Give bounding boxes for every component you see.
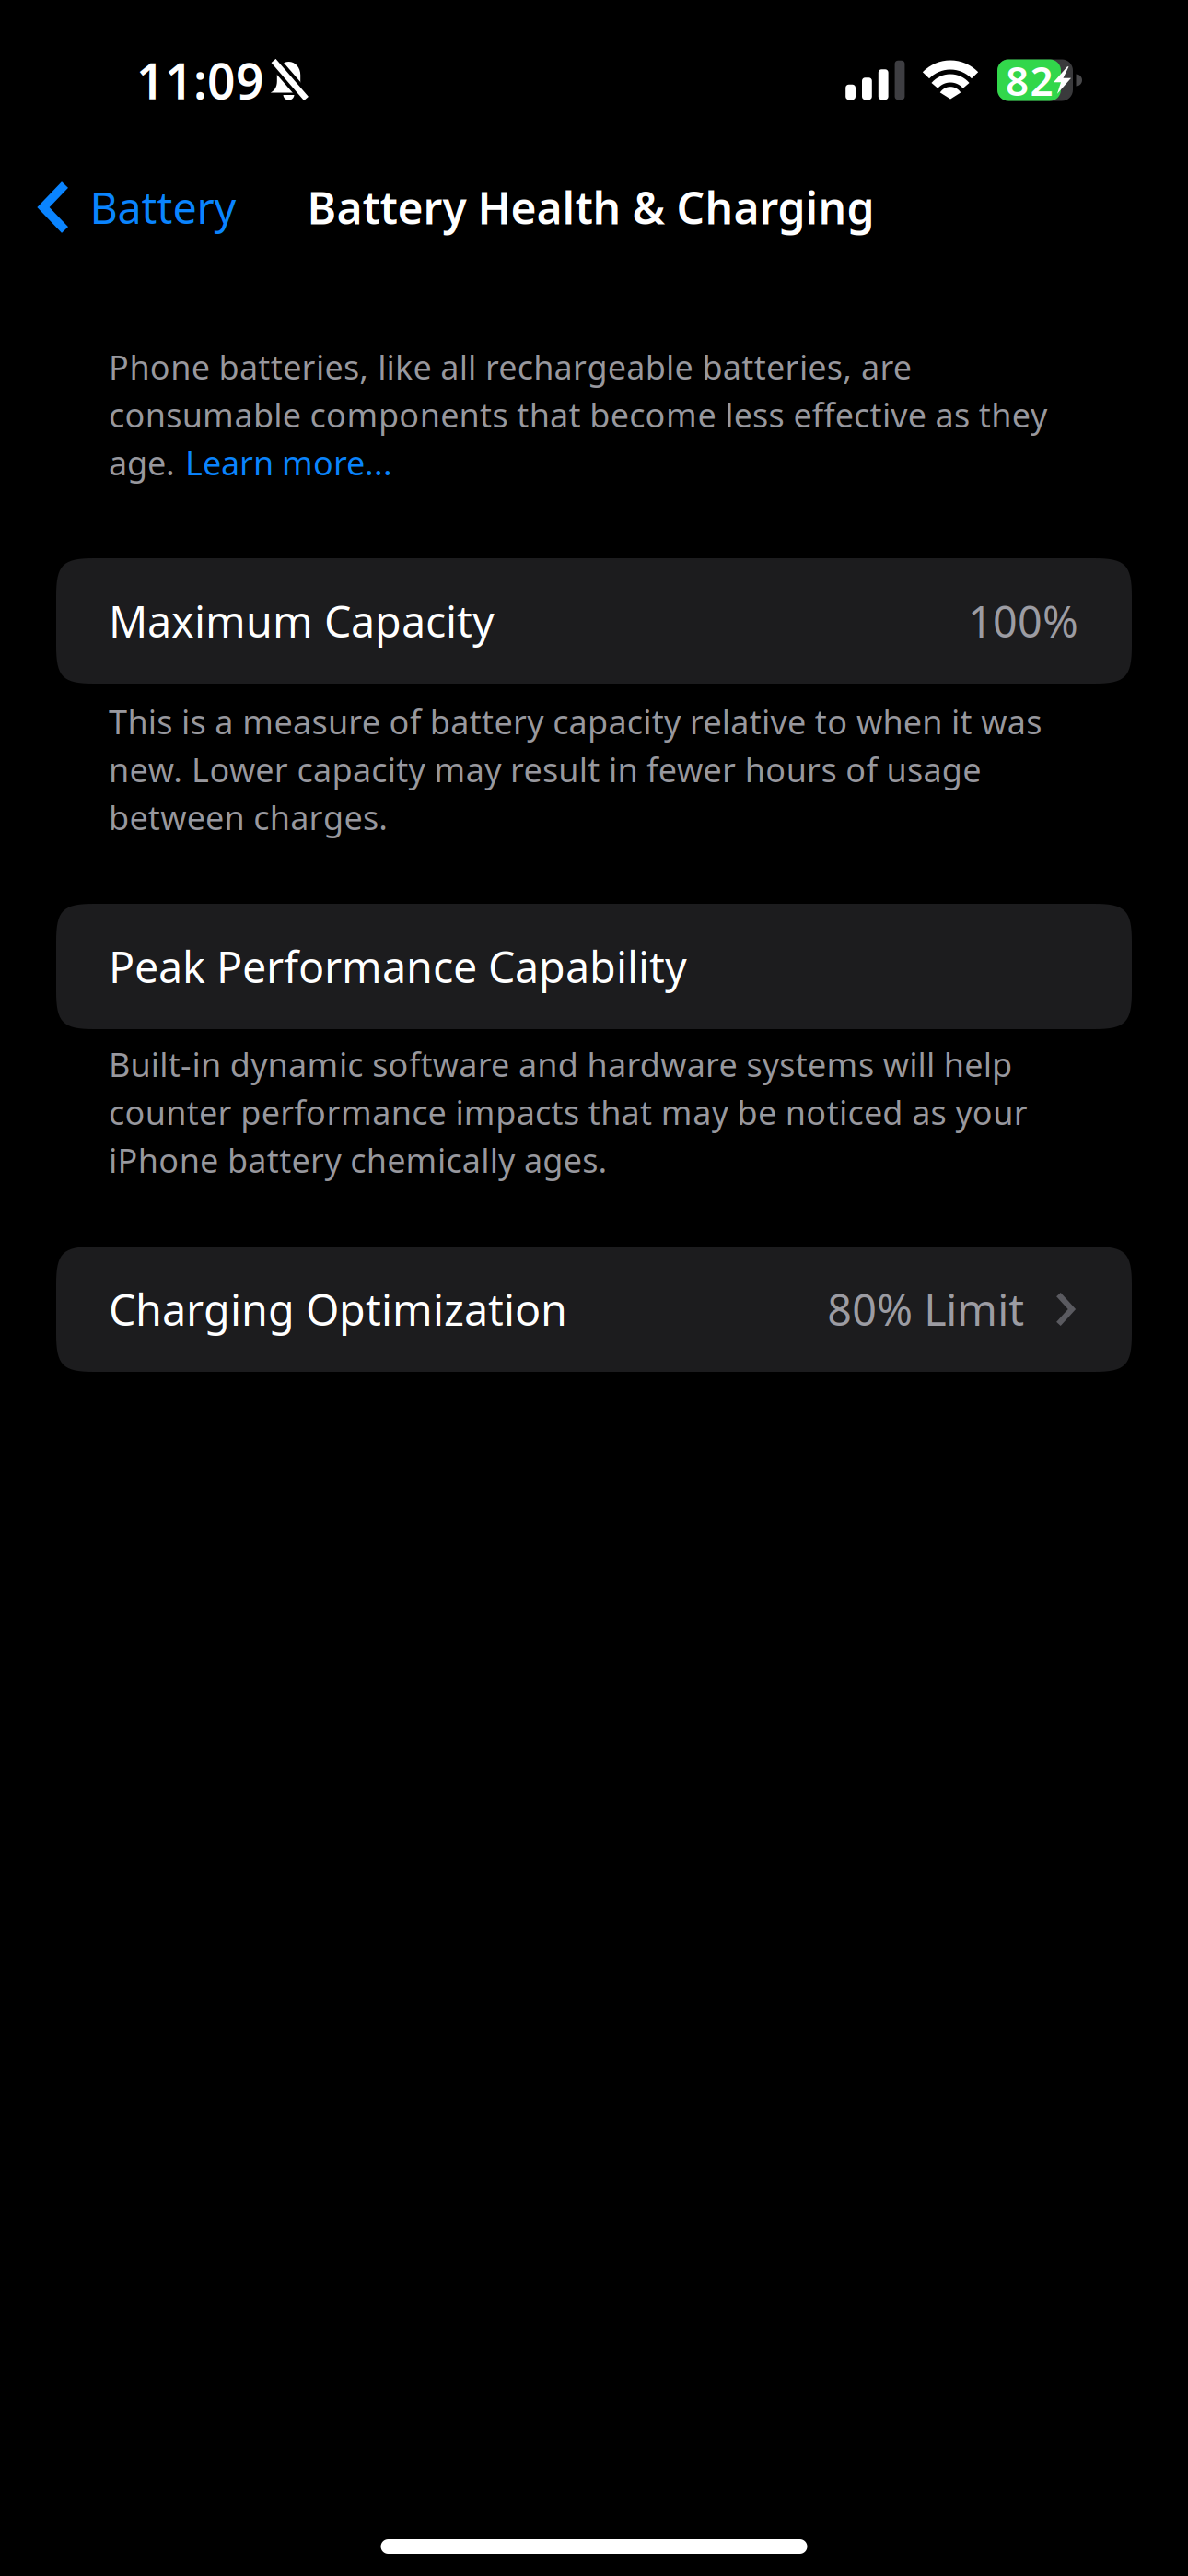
staticText: Maximum Capacity	[109, 592, 495, 650]
staticText: consumable components that become less e…	[109, 393, 1047, 437]
staticText: between charges.	[109, 795, 388, 839]
staticText: 82	[1006, 53, 1053, 107]
staticText: 11:09	[136, 48, 264, 113]
staticText: Built-in dynamic software and hardware s…	[109, 1042, 1012, 1086]
staticText: counter performance impacts that may be …	[109, 1090, 1027, 1134]
button[interactable]: Learn more...	[175, 440, 392, 485]
staticText: Peak Performance Capability	[109, 938, 687, 995]
staticText: Phone batteries, like all rechargeable b…	[109, 345, 912, 389]
staticText: iPhone battery chemically ages.	[109, 1138, 607, 1182]
staticText: Charging Optimization	[109, 1281, 567, 1338]
staticText: 100%	[968, 592, 1078, 650]
staticText: Battery	[90, 179, 236, 236]
button[interactable]: Charging Optimization	[56, 1247, 1132, 1372]
button[interactable]: Maximum Capacity	[56, 558, 1132, 684]
staticText: age.	[109, 440, 175, 485]
button[interactable]: Back to Battery	[0, 146, 253, 268]
staticText: new. Lower capacity may result in fewer …	[109, 747, 981, 791]
staticText: 80% Limit	[827, 1281, 1024, 1338]
staticText: Learn more...	[185, 440, 392, 485]
staticText: This is a measure of battery capacity re…	[109, 699, 1042, 743]
button[interactable]: Peak Performance Capability	[56, 904, 1132, 1029]
staticText: Battery Health & Charging	[307, 178, 874, 237]
